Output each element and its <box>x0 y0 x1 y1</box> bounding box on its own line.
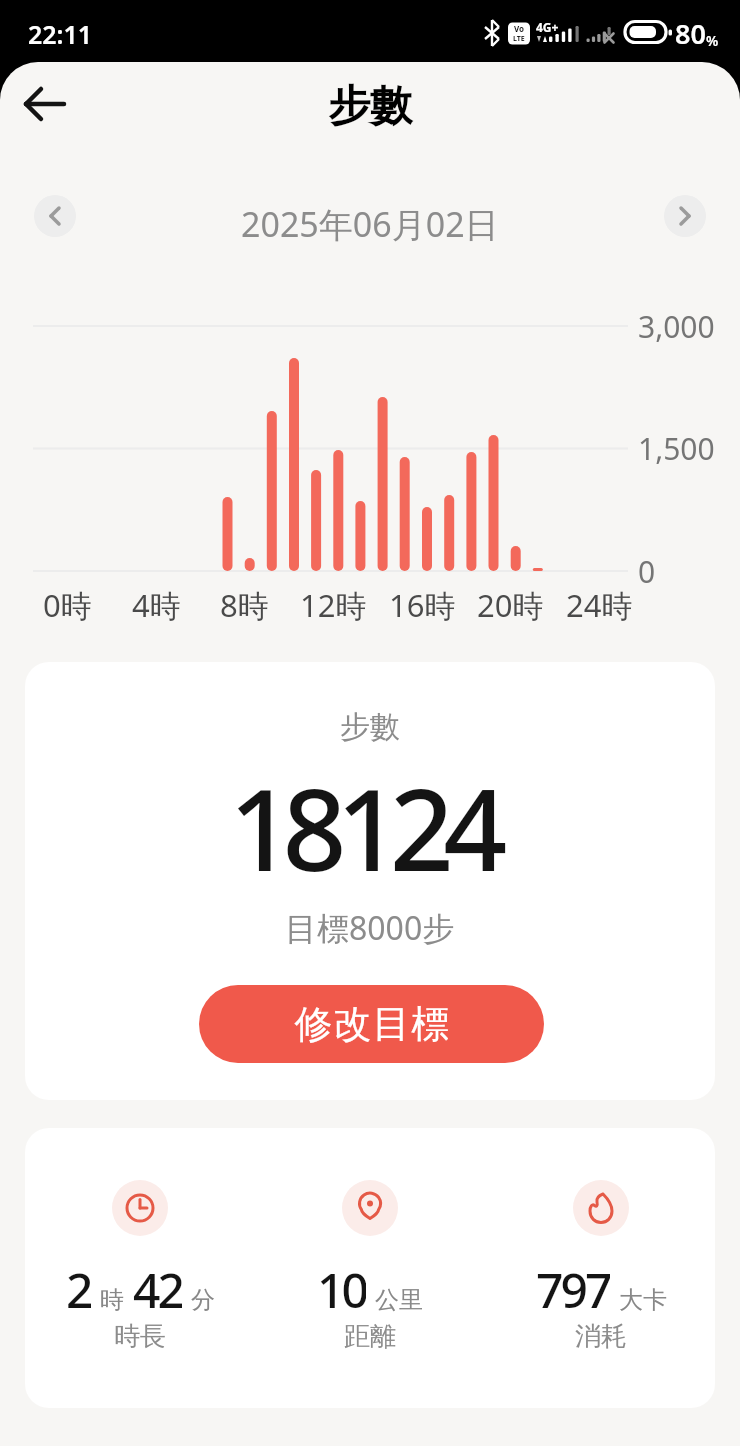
staticText: 目標8000步 <box>285 906 455 950</box>
staticText: 分 <box>191 1285 215 1315</box>
staticText: Vo <box>514 23 525 34</box>
staticText: 0 <box>638 551 656 591</box>
staticText: 距離 <box>344 1320 396 1353</box>
staticText: 1,500 <box>638 428 715 468</box>
staticText: 20時 <box>477 584 544 626</box>
staticText: 42 <box>133 1257 182 1309</box>
staticText: 2 <box>66 1257 91 1309</box>
staticText: 797 <box>536 1257 610 1309</box>
staticText: 24時 <box>566 584 633 626</box>
button[interactable] <box>18 82 74 128</box>
staticText: 16時 <box>389 584 456 626</box>
staticText: 4時 <box>132 584 181 626</box>
staticText: 修改目標 <box>294 1000 450 1048</box>
staticText: % <box>706 31 719 50</box>
staticText: 步數 <box>328 80 412 133</box>
staticText: 3,000 <box>638 306 715 346</box>
staticText: 80 <box>675 15 706 52</box>
staticText: 時 <box>100 1285 124 1315</box>
staticText: 大卡 <box>619 1285 667 1315</box>
staticText: 消耗 <box>575 1320 627 1353</box>
staticText: 10 <box>317 1257 366 1309</box>
staticText: 公里 <box>375 1285 423 1315</box>
staticText: 0時 <box>43 584 92 626</box>
staticText: 4G+ <box>536 19 559 34</box>
staticText: 22:11 <box>28 17 93 51</box>
staticText: LTE <box>513 34 525 44</box>
staticText: 步數 <box>340 708 400 746</box>
button[interactable] <box>664 195 706 237</box>
button[interactable]: 修改目標 <box>199 985 544 1063</box>
staticText: 12時 <box>300 584 367 626</box>
staticText: 時長 <box>114 1320 166 1353</box>
staticText: 18124 <box>229 751 497 904</box>
staticText: 8時 <box>220 584 269 626</box>
staticText: 2025年06月02日 <box>241 201 499 247</box>
button[interactable] <box>34 195 76 237</box>
